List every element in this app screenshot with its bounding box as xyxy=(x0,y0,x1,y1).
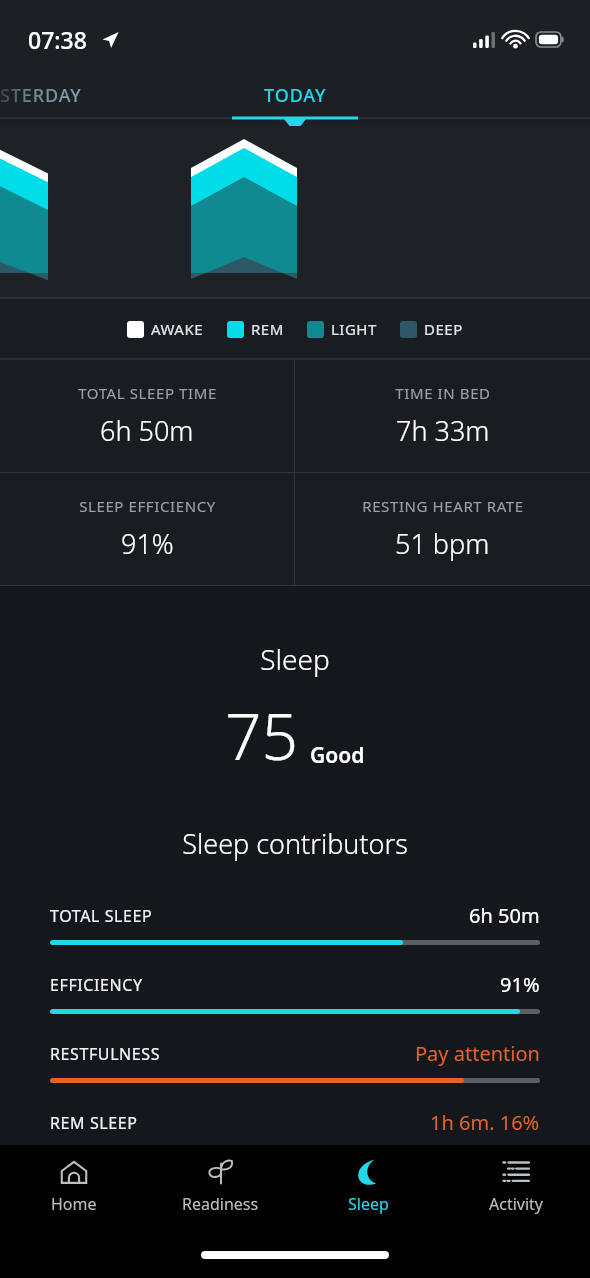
staticText: Home xyxy=(51,1193,97,1215)
staticText: LIGHT xyxy=(331,319,377,339)
button[interactable]: RESTFULNESS xyxy=(0,1040,590,1083)
staticText: 91% xyxy=(121,525,174,562)
staticText: Readiness xyxy=(182,1193,259,1215)
staticText: REM xyxy=(251,319,284,339)
button[interactable]: Home xyxy=(0,1145,147,1237)
staticText: REM SLEEP xyxy=(50,1112,138,1134)
staticText: RESTFULNESS xyxy=(50,1043,161,1065)
button[interactable]: RESTING HEART RATE xyxy=(295,473,590,585)
staticText: 7h 33m xyxy=(396,412,490,449)
button[interactable]: Activity xyxy=(442,1145,590,1237)
button[interactable]: TOTAL SLEEP TIME xyxy=(0,360,294,472)
staticText: 51 bpm xyxy=(395,525,490,562)
staticText: TOTAL SLEEP xyxy=(50,905,153,927)
staticText: TODAY xyxy=(264,83,327,108)
staticText: AWAKE xyxy=(151,319,204,339)
staticText: Sleep xyxy=(348,1193,389,1215)
button[interactable]: TODAY xyxy=(264,75,327,108)
staticText: 75 xyxy=(225,692,299,779)
staticText: SLEEP EFFICIENCY xyxy=(79,496,216,516)
staticText: TOTAL SLEEP TIME xyxy=(78,383,217,403)
staticText: RESTING HEART RATE xyxy=(362,496,524,516)
staticText: Sleep contributors xyxy=(0,825,590,862)
button[interactable]: SLEEP EFFICIENCY xyxy=(0,473,294,585)
staticText: Activity xyxy=(489,1193,544,1215)
staticText: 1h 6m. 16% xyxy=(430,1109,540,1136)
staticText: EFFICIENCY xyxy=(50,974,143,996)
staticText: 91% xyxy=(500,971,540,998)
button[interactable]: TOTAL SLEEP xyxy=(0,902,590,945)
staticText: Sleep xyxy=(0,640,590,678)
staticText: DEEP xyxy=(424,319,463,339)
button[interactable]: Sleep xyxy=(294,1145,442,1237)
staticText: 6h 50m xyxy=(469,902,540,929)
button[interactable]: Readiness xyxy=(147,1145,294,1237)
button[interactable]: REM SLEEP xyxy=(0,1109,590,1136)
staticText: Pay attention xyxy=(415,1040,540,1067)
button[interactable]: EFFICIENCY xyxy=(0,971,590,1014)
staticText: STERDAY xyxy=(0,83,82,108)
staticText: Good xyxy=(310,741,365,770)
staticText: 6h 50m xyxy=(100,412,194,449)
staticText: TIME IN BED xyxy=(395,383,491,403)
button[interactable]: TIME IN BED xyxy=(295,360,590,472)
staticText: 07:38 xyxy=(28,24,87,55)
